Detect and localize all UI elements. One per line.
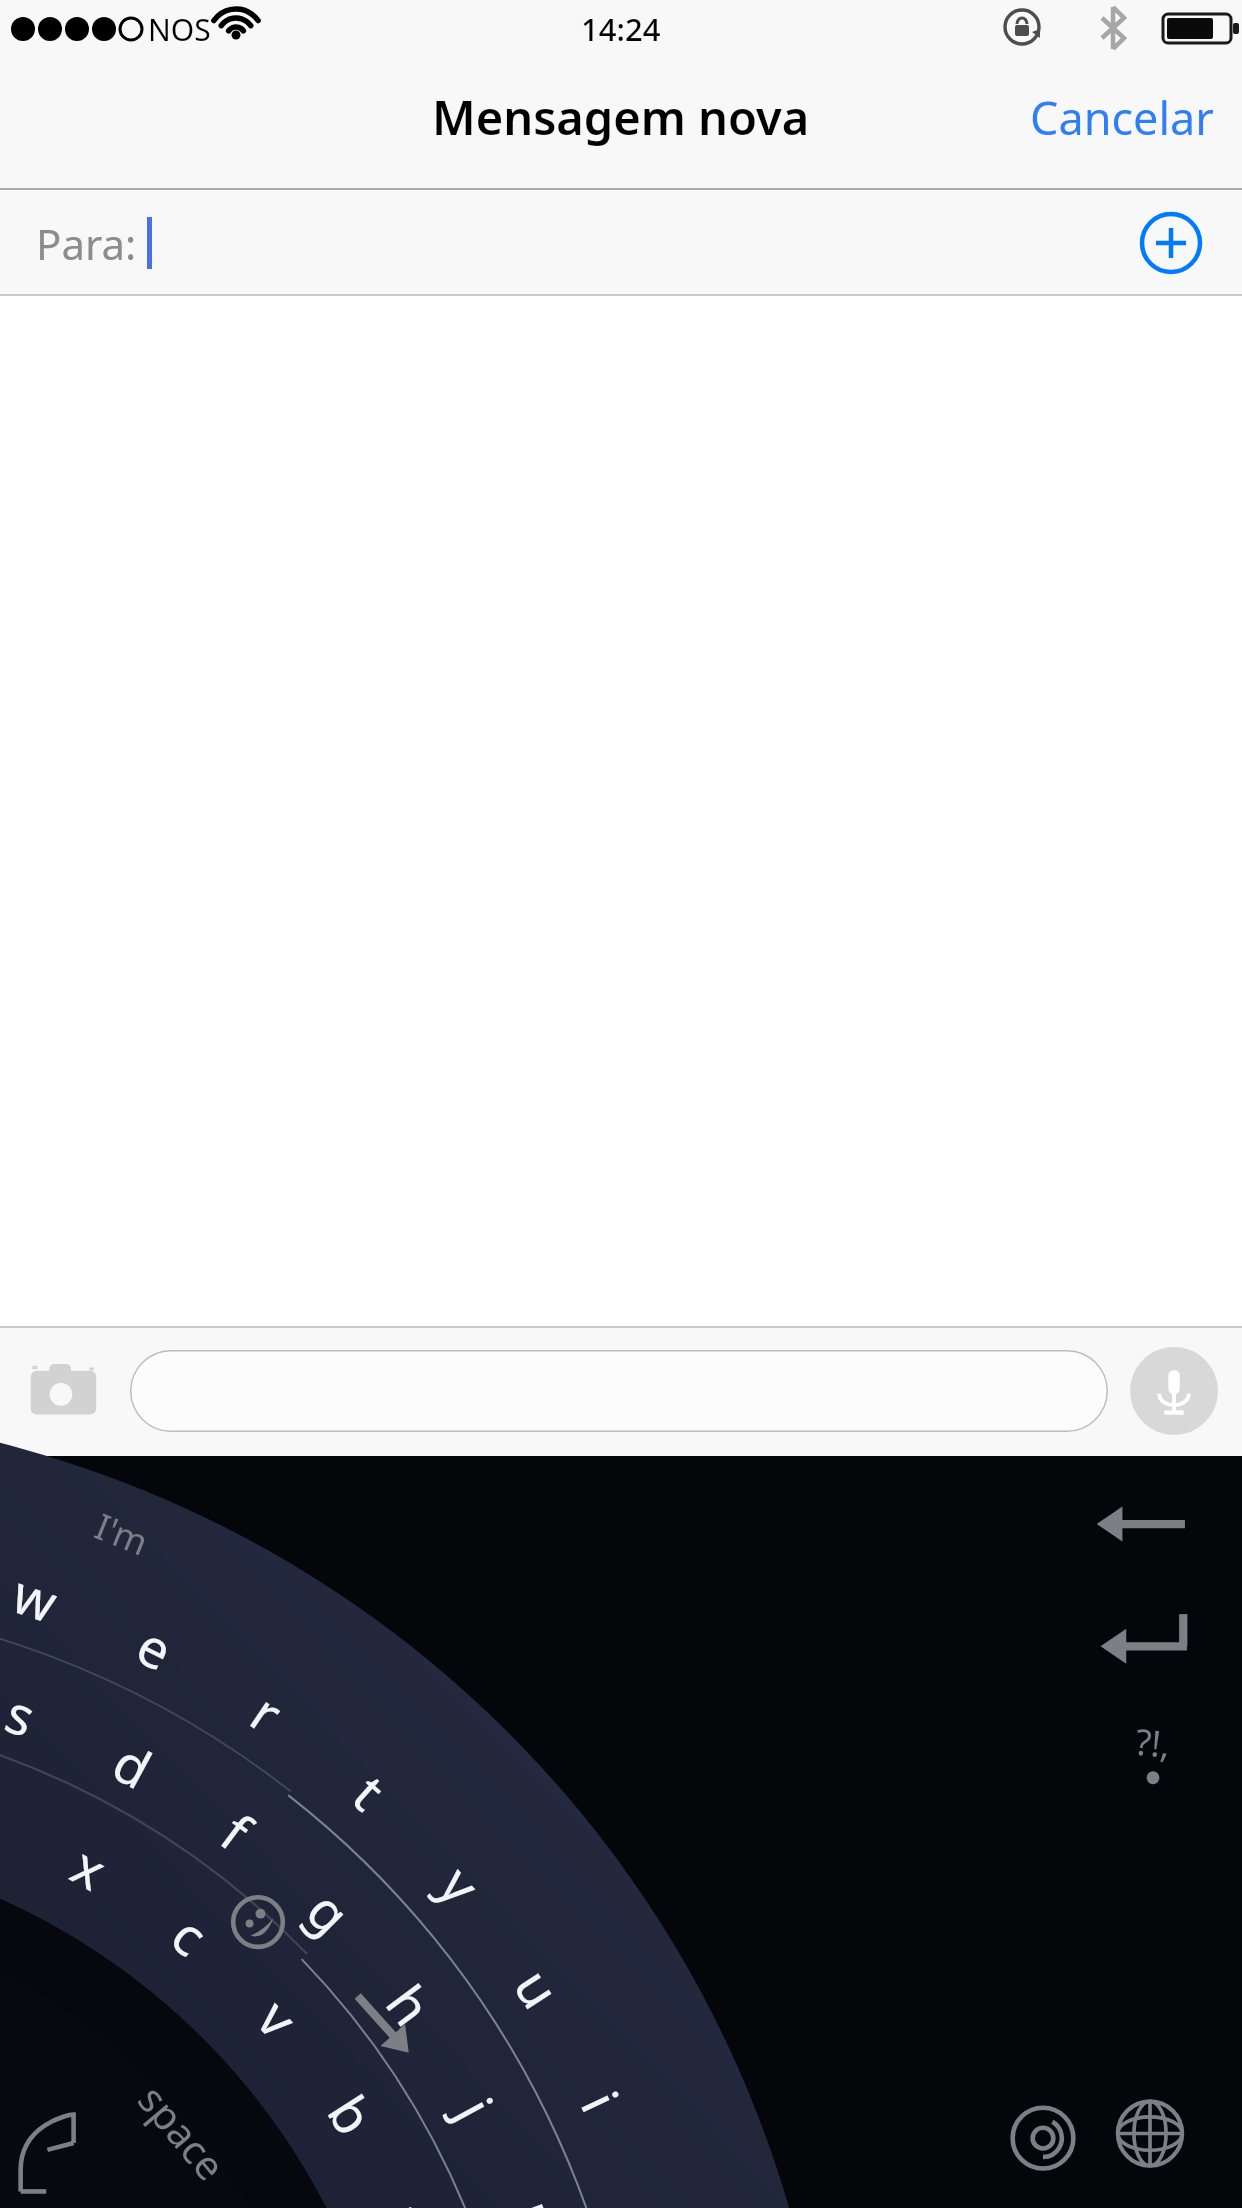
button[interactable]: Câmara [24, 1349, 108, 1433]
staticText: Cancelar [1030, 87, 1214, 148]
button[interactable]: Arroba [990, 2086, 1088, 2184]
button[interactable]: Retrocesso [1086, 1496, 1196, 1606]
button[interactable]: Mudar idioma [1100, 2078, 1200, 2178]
staticText: Para: [36, 215, 137, 272]
staticText: 14:24 [581, 8, 661, 50]
button[interactable]: Shift [326, 2026, 430, 2130]
button[interactable]: Adicionar contacto [1140, 212, 1202, 274]
button[interactable]: Gravar áudio [1130, 1347, 1218, 1435]
staticText: Mensagem nova [432, 85, 810, 149]
button[interactable]: Cancelar [1020, 79, 1224, 156]
button[interactable]: Layout do teclado [0, 2076, 120, 2196]
button[interactable]: Para: [0, 190, 1242, 296]
button[interactable] [130, 1350, 1108, 1432]
staticText: NOS [148, 9, 211, 50]
button[interactable]: Enter [1086, 1616, 1196, 1726]
button[interactable]: Emoji [210, 1926, 306, 2022]
